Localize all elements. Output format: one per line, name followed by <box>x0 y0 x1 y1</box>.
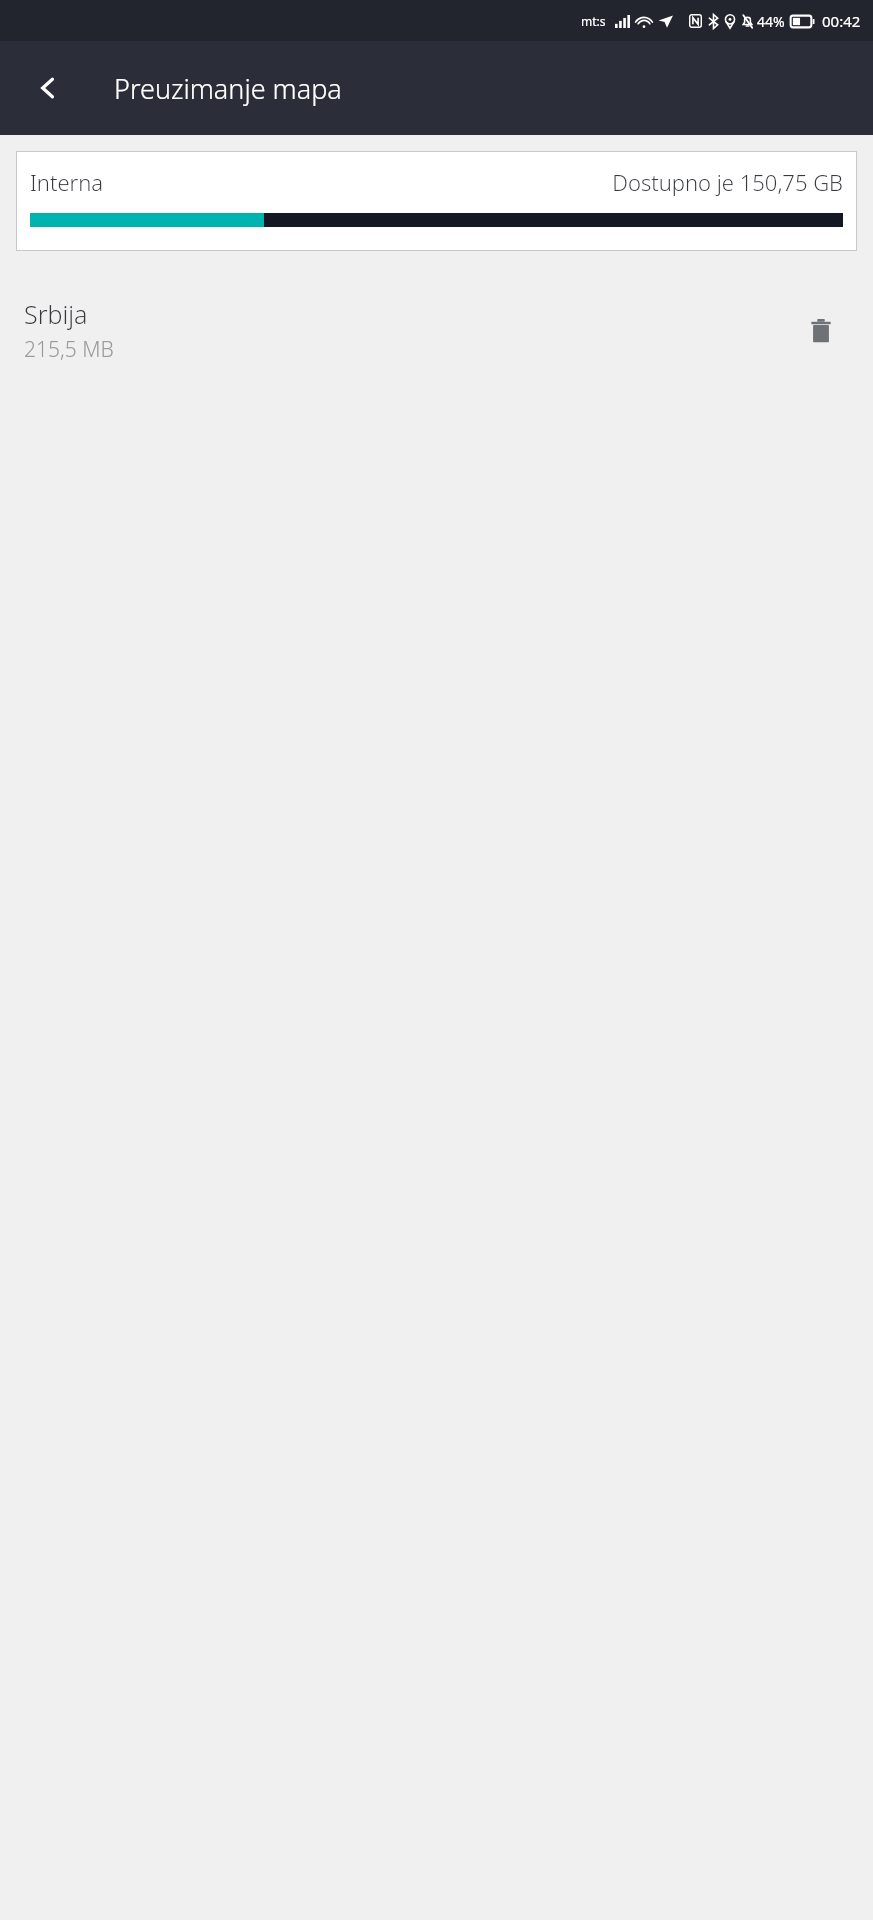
button[interactable]: Delete <box>793 303 849 359</box>
staticText: 215,5 MB <box>24 335 114 364</box>
staticText: Interna <box>30 167 104 197</box>
staticText: Srbija <box>24 297 88 331</box>
staticText: Preuzimanje mapa <box>114 70 342 107</box>
staticText: 00:42 <box>822 11 861 31</box>
staticText: 44% <box>757 12 785 31</box>
button[interactable]: Srbija <box>0 287 873 374</box>
staticText: mt:s <box>581 13 606 29</box>
button[interactable]: Back <box>22 62 74 114</box>
staticText: Dostupno je 150,75 GB <box>612 167 843 197</box>
button[interactable]: Interna <box>16 151 857 251</box>
